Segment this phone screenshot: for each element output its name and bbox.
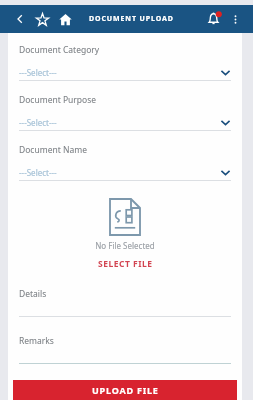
button[interactable]: Remarks <box>8 335 242 364</box>
button[interactable]: More options <box>226 10 244 28</box>
staticText: UPLOAD FILE <box>92 384 159 396</box>
button[interactable]: Document Category <box>8 44 242 81</box>
button[interactable]: Home <box>55 9 75 29</box>
button[interactable]: Notifications <box>204 9 224 29</box>
button[interactable]: UPLOAD FILE <box>13 380 237 400</box>
staticText: Document Name <box>19 144 87 156</box>
button[interactable]: Favorites <box>32 9 52 29</box>
staticText: DOCUMENT UPLOAD <box>89 14 174 24</box>
button[interactable]: Details <box>8 288 242 317</box>
staticText: Document Purpose <box>19 94 97 106</box>
button[interactable]: Back <box>11 10 29 28</box>
staticText: SELECT FILE <box>98 258 153 270</box>
button[interactable]: Document Name <box>8 144 242 181</box>
staticText: ---Select--- <box>19 117 57 128</box>
button[interactable]: SELECT FILE <box>92 256 159 272</box>
staticText: Remarks <box>19 335 54 347</box>
staticText: ---Select--- <box>19 67 57 78</box>
staticText: Details <box>19 288 47 300</box>
staticText: No File Selected <box>95 240 155 251</box>
button[interactable]: Document Purpose <box>8 94 242 131</box>
staticText: ---Select--- <box>19 167 57 178</box>
staticText: Document Category <box>19 44 100 56</box>
